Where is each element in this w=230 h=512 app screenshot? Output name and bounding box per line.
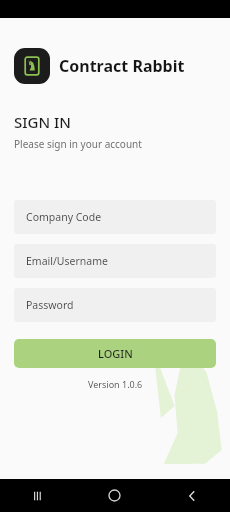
button[interactable]: Home [76,479,153,512]
button[interactable]: Recent apps [0,479,76,512]
staticText: Password [26,298,74,312]
staticText: Version 1.0.6 [88,378,143,390]
staticText: SIGN IN [14,112,71,132]
staticText: Please sign in your account [14,137,142,151]
staticText: LOGIN [98,346,133,361]
button[interactable]: Email/Username [14,244,216,278]
button[interactable]: Back [153,479,230,512]
staticText: Company Code [26,210,102,224]
button[interactable]: Company Code [14,200,216,234]
button[interactable]: Password [14,288,216,322]
staticText: Contract Rabbit [59,55,185,77]
staticText: Email/Username [26,254,108,268]
button[interactable]: LOGIN [14,339,216,368]
